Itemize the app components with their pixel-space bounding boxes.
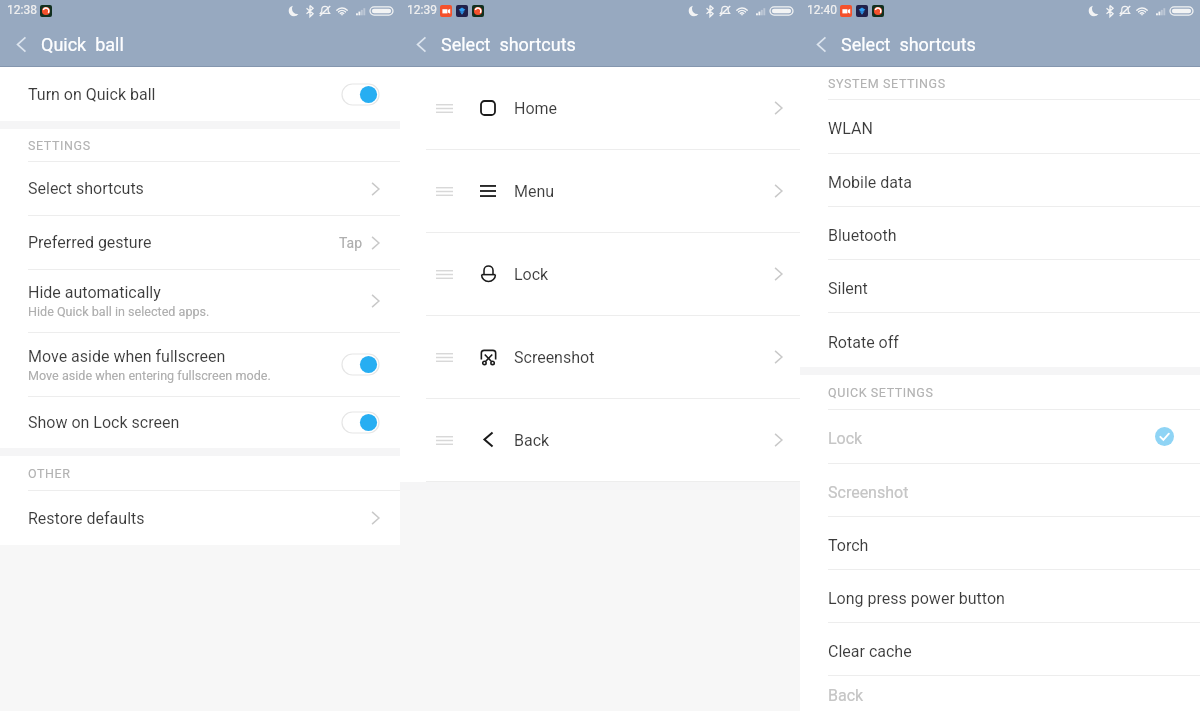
staticText: Long press power button [828,589,1005,608]
button[interactable]: Bluetooth [800,207,1200,259]
button[interactable]: Select shortcuts [0,162,400,215]
staticText: Rotate off [828,333,899,352]
staticText: Screenshot [828,483,909,502]
button[interactable]: Lock [400,233,800,315]
button[interactable]: Torch [800,517,1200,569]
button[interactable]: Silent [800,260,1200,312]
button[interactable]: Lock [800,410,1200,463]
button[interactable]: Move aside when fullscreen [0,333,400,396]
button[interactable]: Hide automatically [0,270,400,332]
staticText: Home [514,99,558,118]
staticText: Lock [514,265,549,284]
staticText: Back [828,686,864,705]
staticText: Silent [828,279,868,298]
button[interactable]: Menu [400,150,800,232]
staticText: 12:39 [407,3,437,17]
staticText: WLAN [828,119,873,138]
staticText: Restore defaults [28,509,145,528]
staticText: Preferred gesture [28,233,152,252]
button[interactable]: Long press power button [800,570,1200,622]
button[interactable]: Back [400,399,800,481]
staticText: QUICK SETTINGS [828,385,934,400]
button[interactable]: Clear cache [800,623,1200,675]
staticText: Menu [514,182,555,201]
staticText: Hide automatically [28,283,161,302]
staticText: Turn on Quick ball [28,85,156,104]
button[interactable]: Home [400,67,800,149]
staticText: Screenshot [514,348,595,367]
staticText: Select shortcuts [28,179,144,198]
staticText: 12:38 [7,3,37,17]
staticText: Clear cache [828,642,912,661]
button[interactable]: Show on Lock screen [0,397,400,448]
staticText: OTHER [28,466,71,481]
button[interactable]: Back [0,22,42,67]
staticText: Hide Quick ball in selected apps. [28,304,210,319]
staticText: Select shortcuts [841,34,976,55]
staticText: Tap [339,235,363,251]
button[interactable]: Mobile data [800,154,1200,206]
staticText: Move aside when fullscreen [28,347,226,366]
staticText: Show on Lock screen [28,413,180,432]
staticText: Back [514,431,550,450]
staticText: SETTINGS [28,138,91,153]
button[interactable]: Restore defaults [0,491,400,545]
staticText: Bluetooth [828,226,897,245]
staticText: Quick ball [41,34,124,55]
button[interactable]: Screenshot [400,316,800,398]
button[interactable]: Rotate off [800,313,1200,367]
staticText: Mobile data [828,173,912,192]
staticText: Select shortcuts [441,34,576,55]
button[interactable]: Back [800,22,842,67]
staticText: SYSTEM SETTINGS [828,76,946,91]
button[interactable]: Screenshot [800,464,1200,516]
staticText: 12:40 [807,3,837,17]
button[interactable]: Preferred gesture [0,216,400,269]
button[interactable]: Back [800,676,1200,711]
staticText: Lock [828,429,863,448]
button[interactable]: Turn on Quick ball [0,67,400,121]
staticText: Move aside when entering fullscreen mode… [28,368,271,383]
staticText: Torch [828,536,869,555]
button[interactable]: WLAN [800,100,1200,153]
button[interactable]: Back [400,22,442,67]
